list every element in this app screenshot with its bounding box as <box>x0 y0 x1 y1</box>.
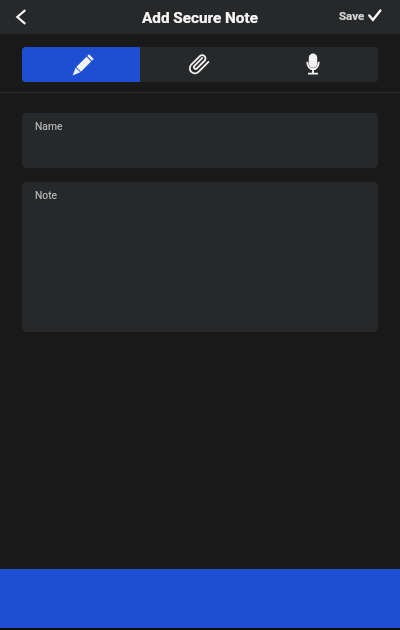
button[interactable]: Note <box>22 182 378 332</box>
staticText: Name <box>35 120 63 132</box>
button[interactable]: Attach file <box>140 47 259 82</box>
button[interactable]: Back <box>0 0 34 34</box>
staticText: Save <box>339 9 365 22</box>
button[interactable]: Text note <box>22 47 140 82</box>
button[interactable]: Voice note <box>259 47 378 82</box>
button[interactable]: Name <box>22 113 378 168</box>
button[interactable]: Save <box>329 9 400 22</box>
staticText: Add Secure Note <box>142 9 258 27</box>
staticText: Note <box>35 189 58 201</box>
